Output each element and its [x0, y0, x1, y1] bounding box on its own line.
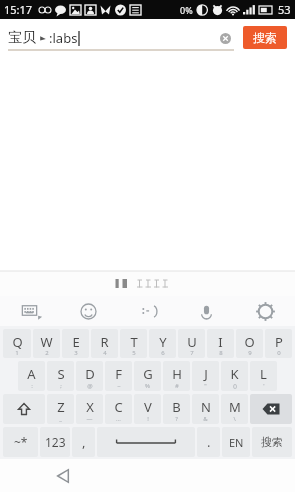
staticText: (): [233, 382, 237, 390]
button[interactable]: K: [221, 361, 248, 391]
staticText: A: [27, 365, 36, 383]
button[interactable]: Backspace: [250, 394, 292, 424]
staticText: Q: [12, 333, 23, 351]
button[interactable]: R: [91, 329, 118, 358]
staticText: F: [115, 365, 122, 383]
staticText: W: [40, 333, 53, 351]
staticText: :labs: [49, 29, 78, 47]
button[interactable]: G: [134, 361, 161, 391]
staticText: M: [229, 398, 241, 416]
button[interactable]: ,: [72, 427, 95, 457]
button[interactable]: Shift: [3, 394, 45, 424]
staticText: 宝贝: [8, 29, 36, 47]
staticText: 8: [219, 349, 223, 357]
staticText: S: [57, 365, 65, 383]
staticText: G: [143, 365, 153, 383]
button[interactable]: ~*: [3, 427, 38, 457]
staticText: T: [130, 333, 138, 351]
button[interactable]: Voice input: [177, 296, 236, 326]
button[interactable]: 搜索: [252, 427, 292, 457]
staticText: 搜索: [261, 435, 283, 449]
staticText: K: [230, 365, 239, 383]
button[interactable]: Emoticons: [118, 296, 177, 326]
staticText: E: [72, 333, 80, 351]
button[interactable]: C: [105, 394, 132, 424]
staticText: I: [218, 333, 223, 351]
staticText: 7: [190, 349, 194, 357]
staticText: ": [204, 382, 207, 390]
button[interactable]: O: [236, 329, 263, 358]
staticText: 0%: [180, 4, 193, 16]
button[interactable]: E: [62, 329, 89, 358]
button[interactable]: D: [76, 361, 103, 391]
button[interactable]: 123: [40, 427, 70, 457]
staticText: :: [31, 382, 33, 390]
button[interactable]: X: [76, 394, 103, 424]
staticText: 123: [45, 434, 66, 450]
button[interactable]: M: [221, 394, 248, 424]
button[interactable]: P: [265, 329, 292, 358]
button[interactable]: V: [134, 394, 161, 424]
staticText: 5: [132, 349, 136, 357]
button[interactable]: .: [197, 427, 220, 457]
staticText: !: [147, 415, 149, 423]
staticText: Z: [57, 398, 65, 416]
staticText: ?: [175, 415, 178, 423]
button[interactable]: W: [33, 329, 60, 358]
staticText: J: [204, 365, 208, 383]
staticText: 2: [45, 349, 49, 357]
staticText: 3: [74, 349, 78, 357]
staticText: 53: [278, 2, 291, 17]
staticText: _: [59, 415, 62, 423]
staticText: 0: [277, 349, 281, 357]
button[interactable]: Emoji: [59, 296, 118, 326]
staticText: —: [86, 415, 93, 423]
button[interactable]: 搜索: [243, 26, 287, 49]
button[interactable]: B: [163, 394, 190, 424]
staticText: 6: [161, 349, 165, 357]
button[interactable]: F: [105, 361, 132, 391]
button[interactable]: EN: [222, 427, 250, 457]
staticText: 搜索: [253, 30, 277, 45]
staticText: %: [145, 382, 150, 390]
staticText: 1: [15, 349, 19, 357]
staticText: ,: [82, 433, 86, 451]
button[interactable]: Back: [46, 459, 80, 492]
button[interactable]: T: [120, 329, 147, 358]
button[interactable]: Space: [97, 427, 195, 457]
staticText: C: [114, 398, 123, 416]
button[interactable]: Z: [47, 394, 74, 424]
button[interactable]: L: [250, 361, 277, 391]
staticText: D: [85, 365, 95, 383]
staticText: U: [187, 333, 197, 351]
staticText: O: [244, 333, 255, 351]
staticText: &: [203, 415, 208, 423]
staticText: V: [144, 398, 152, 416]
staticText: B: [172, 398, 181, 416]
button[interactable]: H: [163, 361, 190, 391]
staticText: H: [172, 365, 182, 383]
button[interactable]: Q: [3, 329, 31, 358]
button[interactable]: Settings: [236, 296, 295, 326]
staticText: Y: [159, 333, 167, 351]
button[interactable]: Clear text: [216, 29, 234, 47]
button[interactable]: Y: [149, 329, 176, 358]
button[interactable]: I: [207, 329, 234, 358]
staticText: P: [275, 333, 283, 351]
staticText: 9: [248, 349, 252, 357]
button[interactable]: U: [178, 329, 205, 358]
button[interactable]: 宝贝: [8, 24, 234, 51]
button[interactable]: J: [192, 361, 219, 391]
button[interactable]: S: [47, 361, 74, 391]
staticText: ...: [116, 415, 121, 423]
staticText: N: [201, 398, 211, 416]
staticText: 4: [103, 349, 107, 357]
staticText: X: [86, 398, 94, 416]
button[interactable]: A: [18, 361, 45, 391]
staticText: #: [175, 382, 179, 390]
staticText: L: [260, 365, 267, 383]
staticText: 15:17: [4, 2, 33, 17]
button[interactable]: N: [192, 394, 219, 424]
staticText: @: [87, 382, 93, 390]
button[interactable]: Keyboard layout: [0, 296, 59, 326]
